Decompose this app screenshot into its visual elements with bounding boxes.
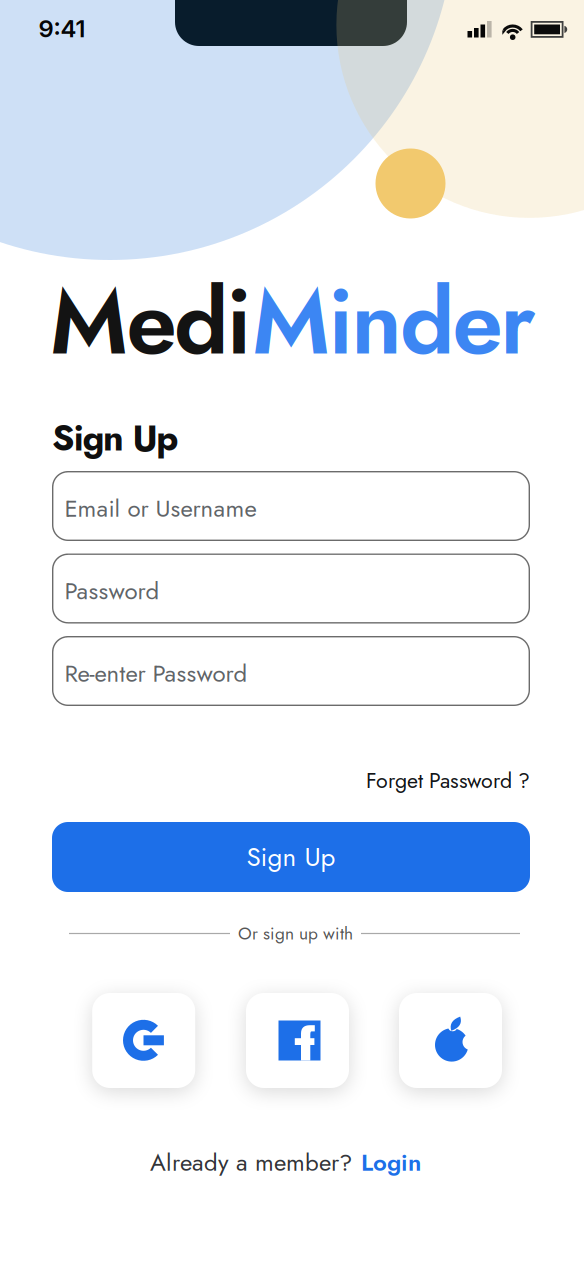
button[interactable]: Forget Password ? xyxy=(366,765,530,796)
button[interactable] xyxy=(92,993,195,1088)
button[interactable] xyxy=(399,993,502,1088)
staticText: Re-enter Password xyxy=(64,656,247,690)
staticText: Email or Username xyxy=(64,491,256,525)
staticText: Already a member? xyxy=(150,1146,352,1179)
staticText: Password xyxy=(64,574,159,608)
staticText: Or sign up with xyxy=(238,921,353,946)
staticText: Medi xyxy=(50,258,252,386)
staticText: Minder xyxy=(252,258,535,386)
staticText: Login xyxy=(361,1146,421,1179)
button[interactable]: Login xyxy=(361,1146,421,1179)
staticText: Sign Up xyxy=(52,413,178,463)
button[interactable]: Sign Up xyxy=(52,822,530,892)
staticText: Sign Up xyxy=(246,838,335,876)
button[interactable]: Re-enter Password xyxy=(52,636,530,706)
button[interactable] xyxy=(246,993,349,1088)
button[interactable]: Email or Username xyxy=(52,471,530,541)
button[interactable]: Password xyxy=(52,553,530,623)
staticText: 9:41 xyxy=(38,14,85,43)
staticText: Forget Password ? xyxy=(366,765,530,796)
